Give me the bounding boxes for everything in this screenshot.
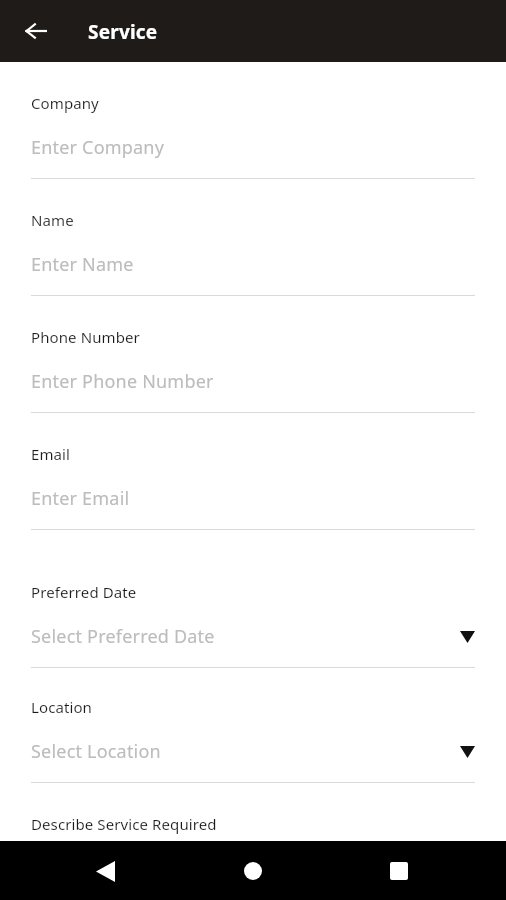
staticText: Enter Email — [31, 486, 130, 511]
staticText: Phone Number — [31, 327, 140, 347]
staticText: Enter Company — [31, 135, 165, 160]
staticText: Service — [88, 19, 158, 45]
button[interactable]: Describe Service Required — [31, 783, 475, 841]
staticText: Enter Phone Number — [31, 369, 214, 394]
staticText: Location — [31, 697, 92, 717]
staticText: Enter Name — [31, 252, 134, 277]
staticText: Email — [31, 444, 71, 464]
button[interactable]: Preferred Date — [31, 530, 475, 668]
button[interactable]: Recent apps — [375, 847, 423, 895]
button[interactable]: Company — [31, 62, 475, 179]
staticText: Name — [31, 210, 74, 230]
button[interactable]: Location — [31, 668, 475, 783]
button[interactable]: Name — [31, 179, 475, 296]
staticText: Select Location — [31, 739, 460, 764]
staticText: Describe Service Required — [31, 814, 217, 834]
staticText: Preferred Date — [31, 582, 137, 602]
button[interactable]: Phone Number — [31, 296, 475, 413]
button[interactable]: Home — [229, 847, 277, 895]
button[interactable]: Back — [14, 9, 58, 53]
button[interactable]: Email — [31, 413, 475, 530]
staticText: Select Preferred Date — [31, 624, 460, 649]
staticText: Company — [31, 93, 99, 113]
button[interactable]: Back — [81, 847, 129, 895]
